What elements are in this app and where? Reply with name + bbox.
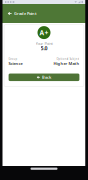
staticText: A+	[39, 28, 48, 37]
staticText: Higher Math	[53, 61, 79, 66]
button[interactable]: Back	[9, 74, 79, 81]
staticText: Science	[9, 61, 23, 66]
staticText: Your Point	[35, 41, 52, 46]
staticText: Optional Subject	[56, 57, 79, 61]
staticText: Grade Point	[14, 11, 37, 16]
staticText: 5.0	[40, 45, 47, 52]
staticText: Group	[9, 57, 18, 61]
staticText: Back	[42, 75, 51, 80]
button[interactable]: Back	[6, 6, 14, 20]
